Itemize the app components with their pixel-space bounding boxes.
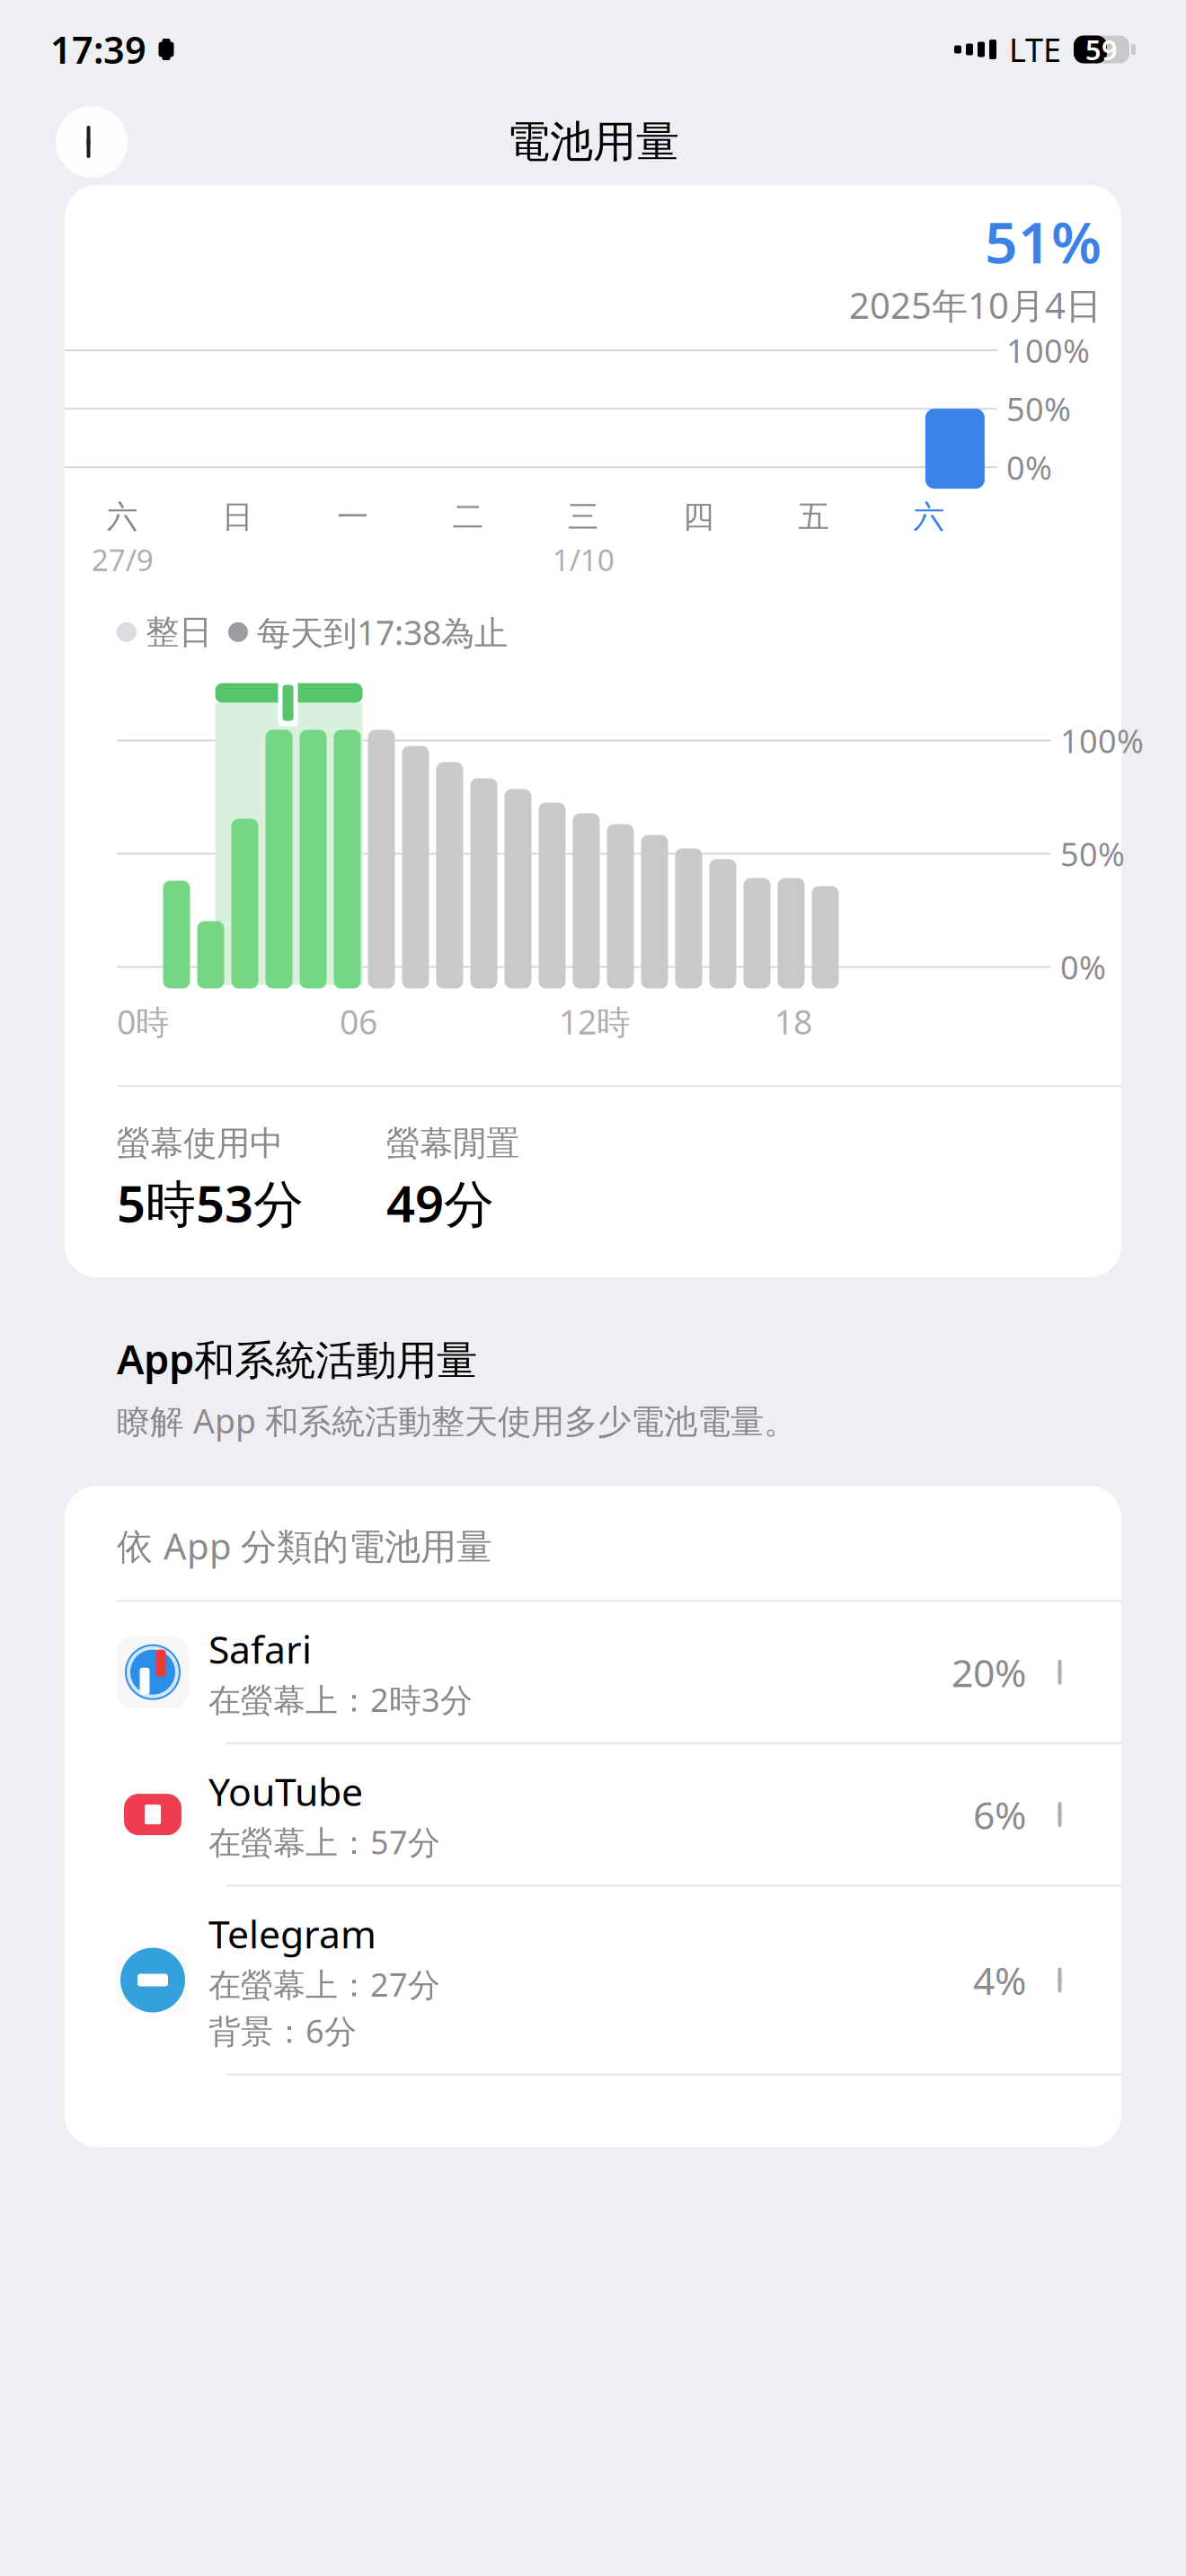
staticText: App和系統活動用量 [117,1331,477,1386]
button[interactable]: Telegram [65,1887,1121,2074]
button[interactable]: Back [56,106,128,178]
staticText: 18 [774,999,812,1044]
staticText: 螢幕閒置 [386,1123,519,1164]
staticText: 1/10 [552,540,614,579]
staticText: 50% [1006,387,1071,430]
staticText: 4% [973,1955,1026,2006]
staticText: 0時 [117,999,169,1044]
staticText: 20% [951,1647,1026,1698]
staticText: 四 [683,498,714,536]
staticText: 三 [567,498,599,536]
staticText: 依 App 分類的電池用量 [117,1522,492,1569]
staticText: 電池用量 [507,115,679,168]
staticText: 螢幕使用中 [117,1123,283,1164]
staticText: 2025年10月4日 [849,281,1102,329]
staticText: 17:39 [50,25,146,74]
staticText: 100% [1060,719,1144,762]
staticText: 59 [1085,31,1118,68]
staticText: 100% [1006,329,1090,372]
button[interactable]: YouTube [65,1744,1121,1885]
button[interactable]: Safari [65,1602,1121,1742]
staticText: 51% [985,203,1102,279]
staticText: 六 [107,498,138,536]
staticText: 6% [973,1789,1026,1840]
staticText: 一 [337,498,368,536]
staticText: 日 [222,498,253,536]
staticText: 5時53分 [117,1169,304,1236]
staticText: 背景：6分 [208,2009,357,2052]
staticText: 瞭解 App 和系統活動整天使用多少電池電量。 [117,1398,797,1443]
staticText: 0% [1060,946,1106,988]
staticText: 0% [1006,446,1052,489]
staticText: 整日 [146,611,212,653]
staticText: 二 [452,498,484,536]
staticText: Telegram [208,1908,376,1959]
staticText: 六 [913,498,945,536]
staticText: 27/9 [91,540,153,579]
staticText: YouTube [208,1766,363,1817]
staticText: 每天到17:38為止 [257,610,508,654]
staticText: 12時 [559,999,630,1044]
staticText: 五 [798,498,829,536]
staticText: 50% [1060,832,1125,875]
staticText: 06 [340,999,377,1044]
staticText: 在螢幕上：57分 [208,1820,440,1863]
staticText: 在螢幕上：27分 [208,1963,440,2006]
staticText: Safari [208,1623,312,1674]
staticText: 49分 [386,1169,494,1236]
staticText: LTE [1009,28,1061,71]
staticText: 在螢幕上：2時3分 [208,1678,473,1721]
